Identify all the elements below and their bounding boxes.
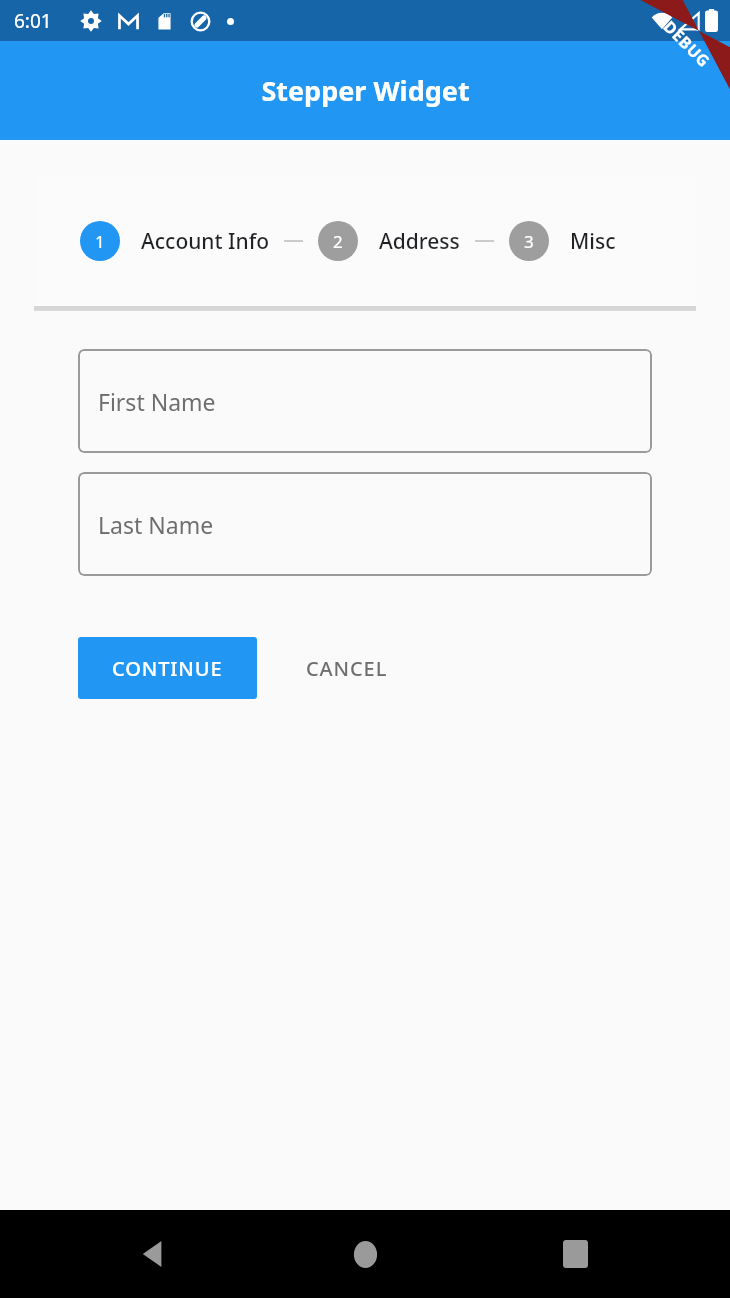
button[interactable]: CANCEL	[279, 637, 415, 699]
button[interactable]: 3	[509, 221, 616, 261]
staticText: 1	[95, 230, 105, 253]
button[interactable]: Recent apps	[540, 1219, 610, 1289]
staticText: Misc	[570, 227, 616, 256]
staticText: 3	[524, 230, 534, 253]
button[interactable]: First Name	[78, 349, 652, 453]
staticText: CONTINUE	[112, 655, 223, 682]
staticText: First Name	[98, 386, 216, 417]
staticText: 6:01	[14, 8, 52, 34]
button[interactable]: Home	[330, 1219, 400, 1289]
staticText: Account Info	[141, 227, 269, 256]
staticText: 2	[333, 230, 343, 253]
staticText: Stepper Widget	[261, 72, 470, 109]
button[interactable]: 1	[34, 176, 696, 306]
staticText: DEBUG	[659, 16, 715, 72]
button[interactable]: Last Name	[78, 472, 652, 576]
staticText: Address	[379, 227, 460, 256]
button[interactable]: CONTINUE	[78, 637, 257, 699]
staticText: Last Name	[98, 509, 214, 540]
staticText: CANCEL	[306, 655, 388, 682]
button[interactable]: Back	[118, 1219, 188, 1289]
button[interactable]: 1	[80, 221, 269, 261]
button[interactable]: 2	[318, 221, 460, 261]
